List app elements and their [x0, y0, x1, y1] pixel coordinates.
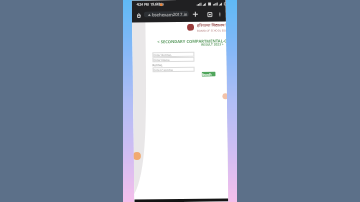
button[interactable]: More options — [215, 9, 224, 18]
staticText: Enter Name — [153, 58, 170, 62]
staticText: Search Result — [202, 72, 216, 77]
staticText: Enter Captcha — [154, 68, 174, 72]
staticText: Roll No. — [152, 63, 164, 67]
staticText: हरियाणा विद्यालय शिक्षा बोर्ड — [197, 22, 226, 28]
staticText: 4:24 PM 19.6KB/s — [137, 2, 164, 7]
button[interactable]: bsehexam2017.in — [144, 11, 189, 17]
button[interactable]: Search Result — [202, 71, 216, 77]
button[interactable]: Tabs — [205, 9, 214, 19]
staticText: bsehexam2017.in — [152, 11, 188, 17]
staticText: RESULT 2023 > — [201, 42, 224, 47]
staticText: Enter Roll No. — [153, 53, 172, 57]
staticText: < SECONDARY COMPARTMENTAL-CUM-IMPROVEMEN… — [149, 38, 226, 45]
button[interactable]: New tab — [191, 10, 200, 19]
staticText: BOARD OF SCHOOL EDUCATION HARYANA — [197, 28, 226, 33]
button[interactable]: Home — [134, 10, 143, 20]
